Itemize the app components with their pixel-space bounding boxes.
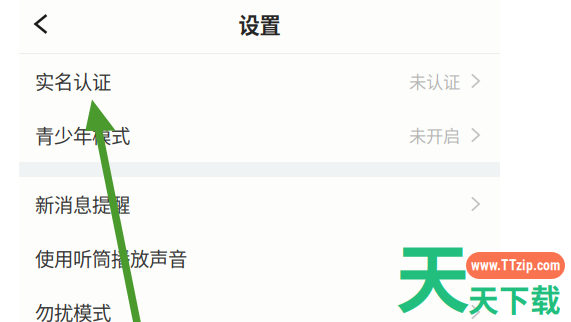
button[interactable]: Back: [19, 2, 63, 46]
staticText: 勿扰模式: [35, 298, 111, 322]
staticText: 使用听筒播放声音: [35, 244, 187, 272]
button[interactable]: 实名认证: [19, 54, 500, 108]
staticText: 设置: [238, 9, 280, 39]
button[interactable]: 勿扰模式: [19, 285, 500, 322]
staticText: 天下载: [468, 276, 561, 320]
staticText: 未开启: [409, 122, 460, 148]
staticText: 新消息提醒: [35, 190, 130, 218]
staticText: 天: [395, 220, 470, 322]
staticText: www.TTzip.com: [471, 257, 560, 274]
button[interactable]: 青少年模式: [19, 108, 500, 162]
staticText: 实名认证: [35, 67, 111, 95]
staticText: 未认证: [409, 68, 460, 94]
button[interactable]: 使用听筒播放声音: [19, 231, 500, 285]
button[interactable]: 新消息提醒: [19, 177, 500, 231]
staticText: 青少年模式: [35, 121, 130, 149]
